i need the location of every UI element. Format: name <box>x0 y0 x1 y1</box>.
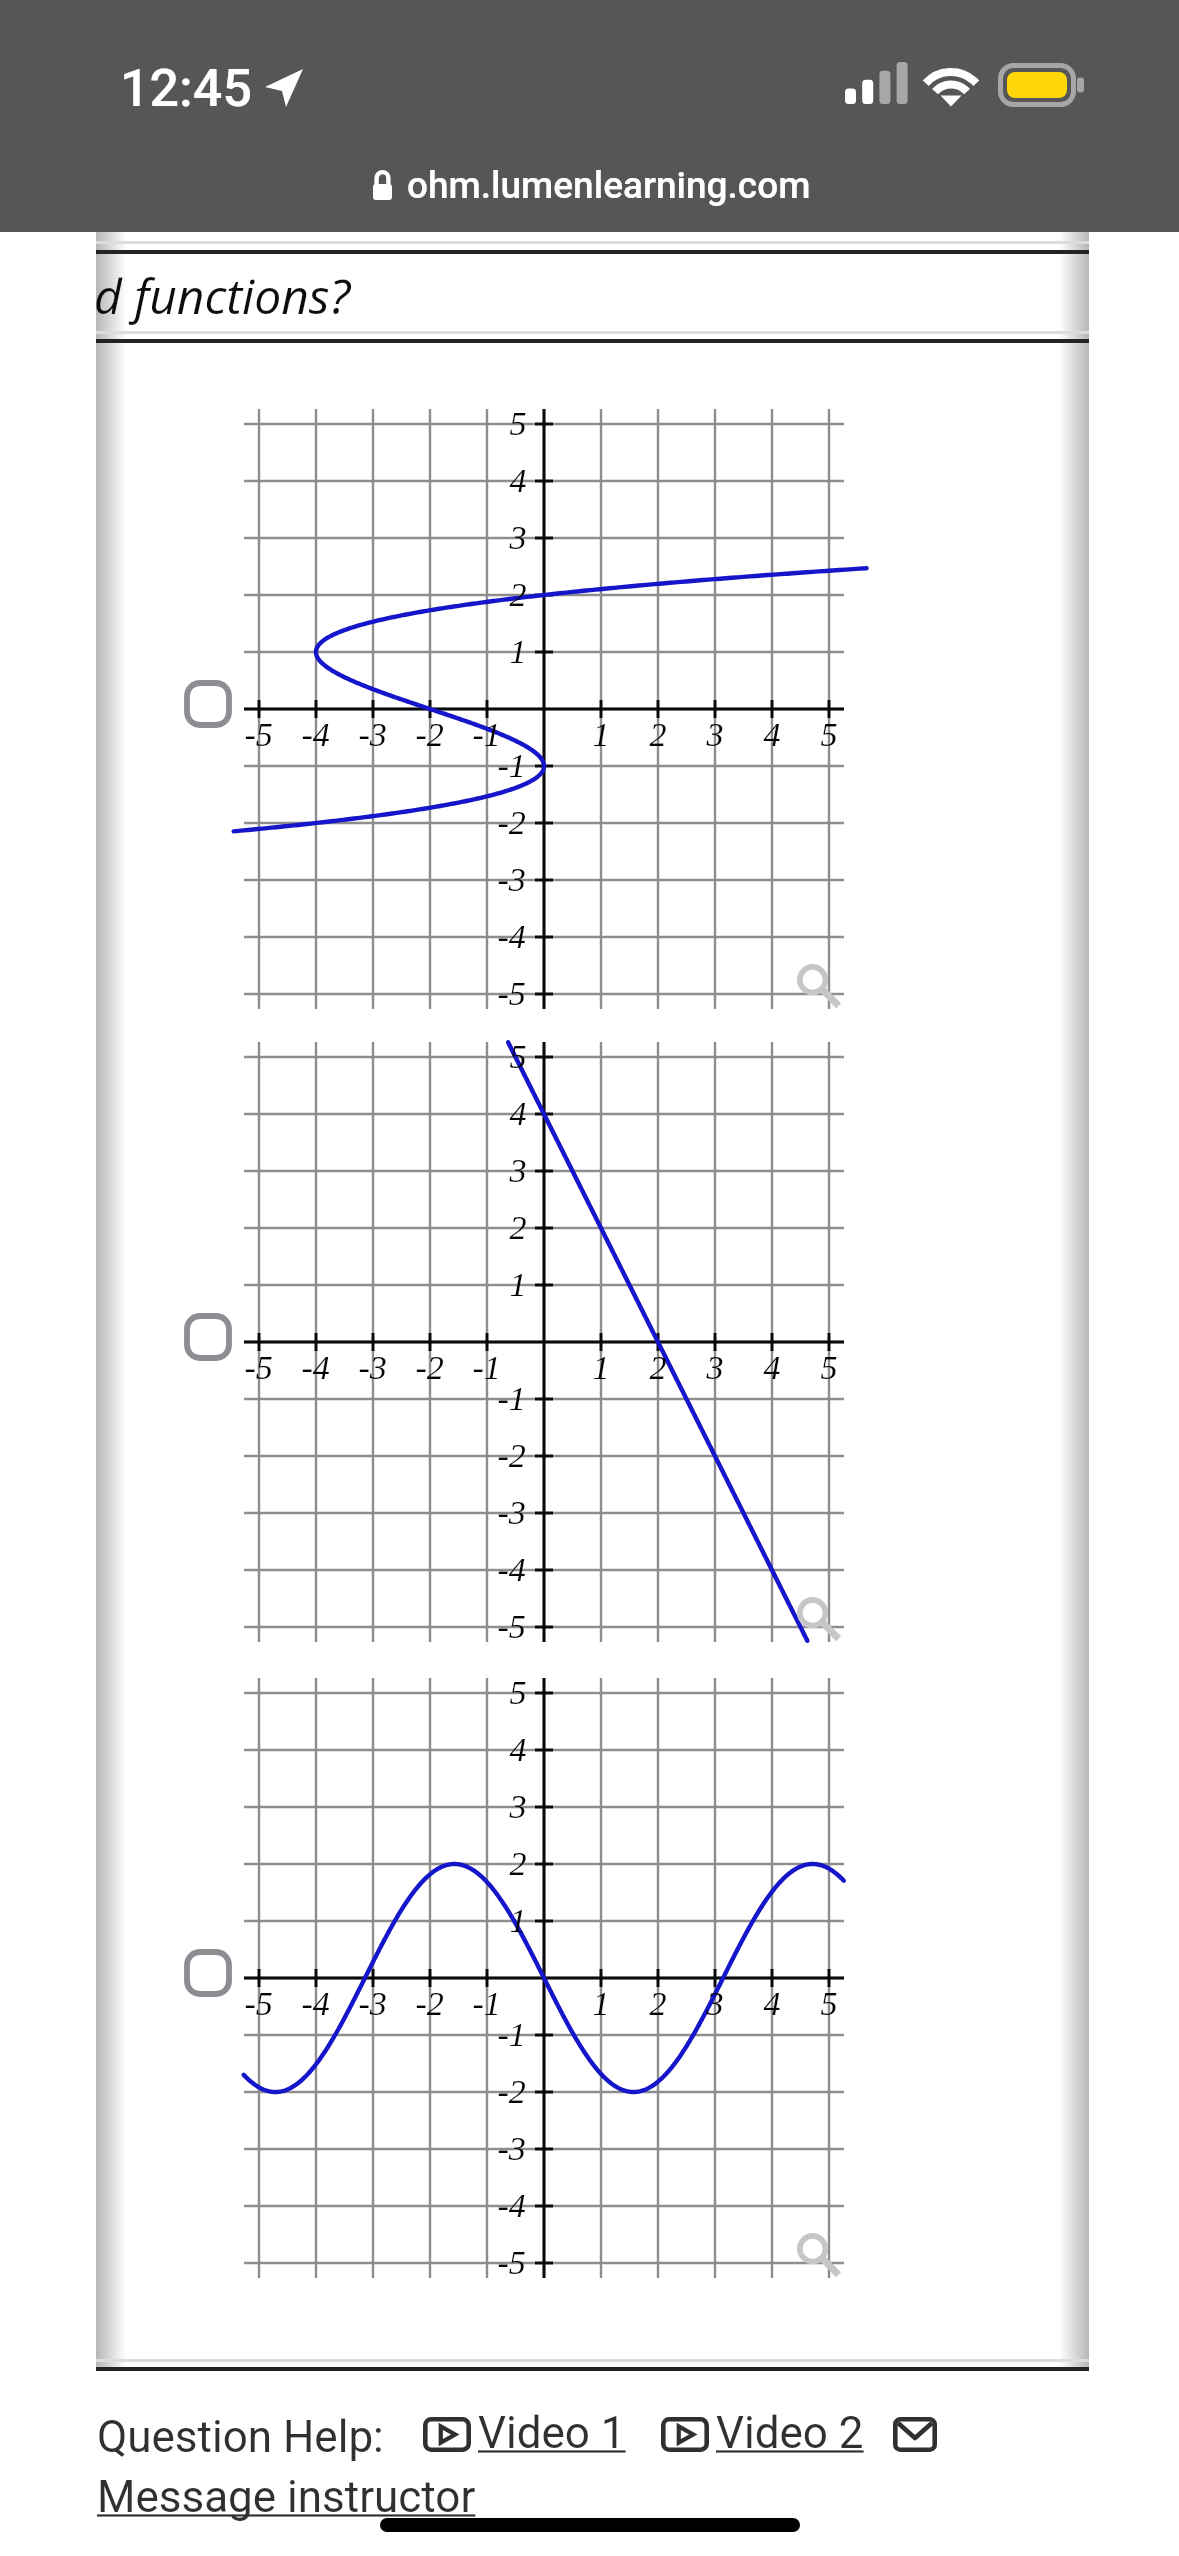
staticText: d functions? <box>94 263 351 328</box>
button[interactable]: Enlarge graph 1 <box>791 958 843 1010</box>
staticText: Video 2 <box>716 2407 864 2453</box>
button[interactable]: Email instructor <box>893 2417 937 2452</box>
staticText: Video 1 <box>478 2407 626 2453</box>
button[interactable]: Enlarge graph 3 <box>791 2227 843 2279</box>
button[interactable]: Video 2 <box>661 2412 866 2458</box>
button[interactable]: Video 1 <box>423 2412 628 2458</box>
button[interactable]: Select answer choice 2 <box>184 1313 232 1361</box>
staticText: Message instructor <box>97 2471 476 2523</box>
button[interactable]: Message instructor <box>97 2471 476 2523</box>
staticText: Question Help: <box>97 2411 384 2463</box>
staticText: 12:45 <box>120 58 252 119</box>
button[interactable]: Enlarge graph 2 <box>791 1591 843 1643</box>
button[interactable]: Select answer choice 3 <box>184 1949 232 1997</box>
button[interactable]: Select answer choice 1 <box>184 680 232 728</box>
staticText: ohm.lumenlearning.com <box>407 164 811 207</box>
